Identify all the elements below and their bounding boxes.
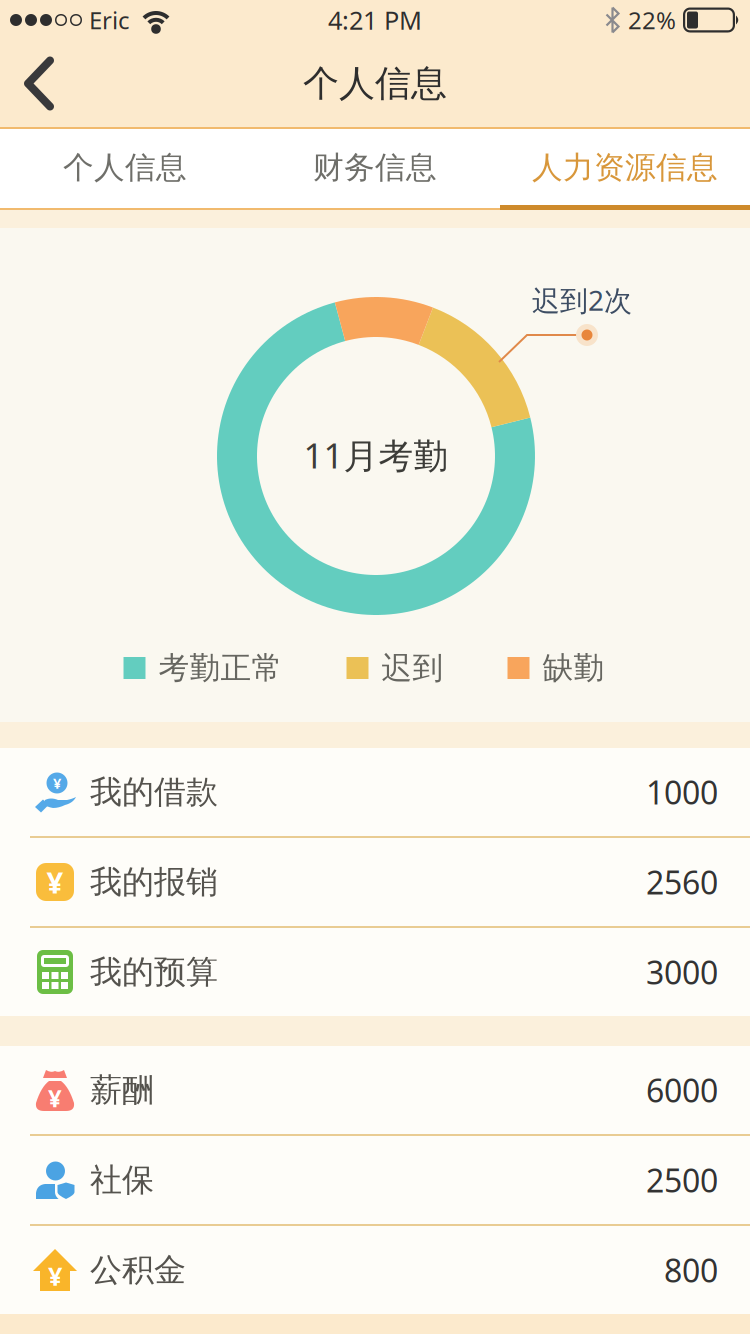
staticText: 11月考勤 [303, 432, 448, 478]
staticText: 薪酬 [90, 1070, 154, 1110]
button[interactable]: ¥ [0, 838, 750, 926]
staticText: 3000 [646, 951, 718, 993]
staticText: 2500 [646, 1159, 718, 1201]
staticText: Eric [89, 4, 130, 36]
button[interactable]: 个人信息 [0, 127, 250, 208]
staticText: 社保 [90, 1160, 154, 1200]
button[interactable]: 社保 [0, 1136, 750, 1224]
button[interactable]: ¥ [0, 1046, 750, 1134]
staticText: 2560 [646, 861, 718, 903]
staticText: ¥ [46, 862, 63, 901]
staticText: 1000 [646, 771, 718, 813]
button[interactable]: ¥ [0, 748, 750, 836]
staticText: 缺勤 [542, 649, 604, 687]
staticText: 800 [664, 1249, 718, 1291]
staticText: 我的借款 [90, 772, 218, 812]
staticText: 迟到2次 [532, 281, 632, 319]
staticText: 22% [628, 4, 676, 36]
button[interactable]: ¥ [0, 1226, 750, 1314]
staticText: 考勤正常 [158, 649, 282, 687]
button[interactable]: 人力资源信息 [500, 127, 750, 208]
staticText: 财务信息 [313, 149, 437, 186]
staticText: ¥ [48, 1082, 62, 1114]
staticText: 公积金 [90, 1250, 186, 1290]
staticText: 我的预算 [90, 952, 218, 992]
staticText: 我的报销 [90, 862, 218, 902]
staticText: 4:21 PM [328, 3, 422, 37]
staticText: 迟到 [381, 649, 443, 687]
staticText: 6000 [646, 1069, 718, 1111]
button[interactable] [0, 46, 66, 120]
button[interactable]: 财务信息 [250, 127, 500, 208]
staticText: ¥ [53, 773, 61, 793]
staticText: ¥ [48, 1259, 62, 1293]
button[interactable]: 我的预算 [0, 928, 750, 1016]
staticText: 个人信息 [63, 149, 187, 186]
staticText: 人力资源信息 [532, 149, 718, 186]
staticText: 个人信息 [303, 61, 447, 106]
